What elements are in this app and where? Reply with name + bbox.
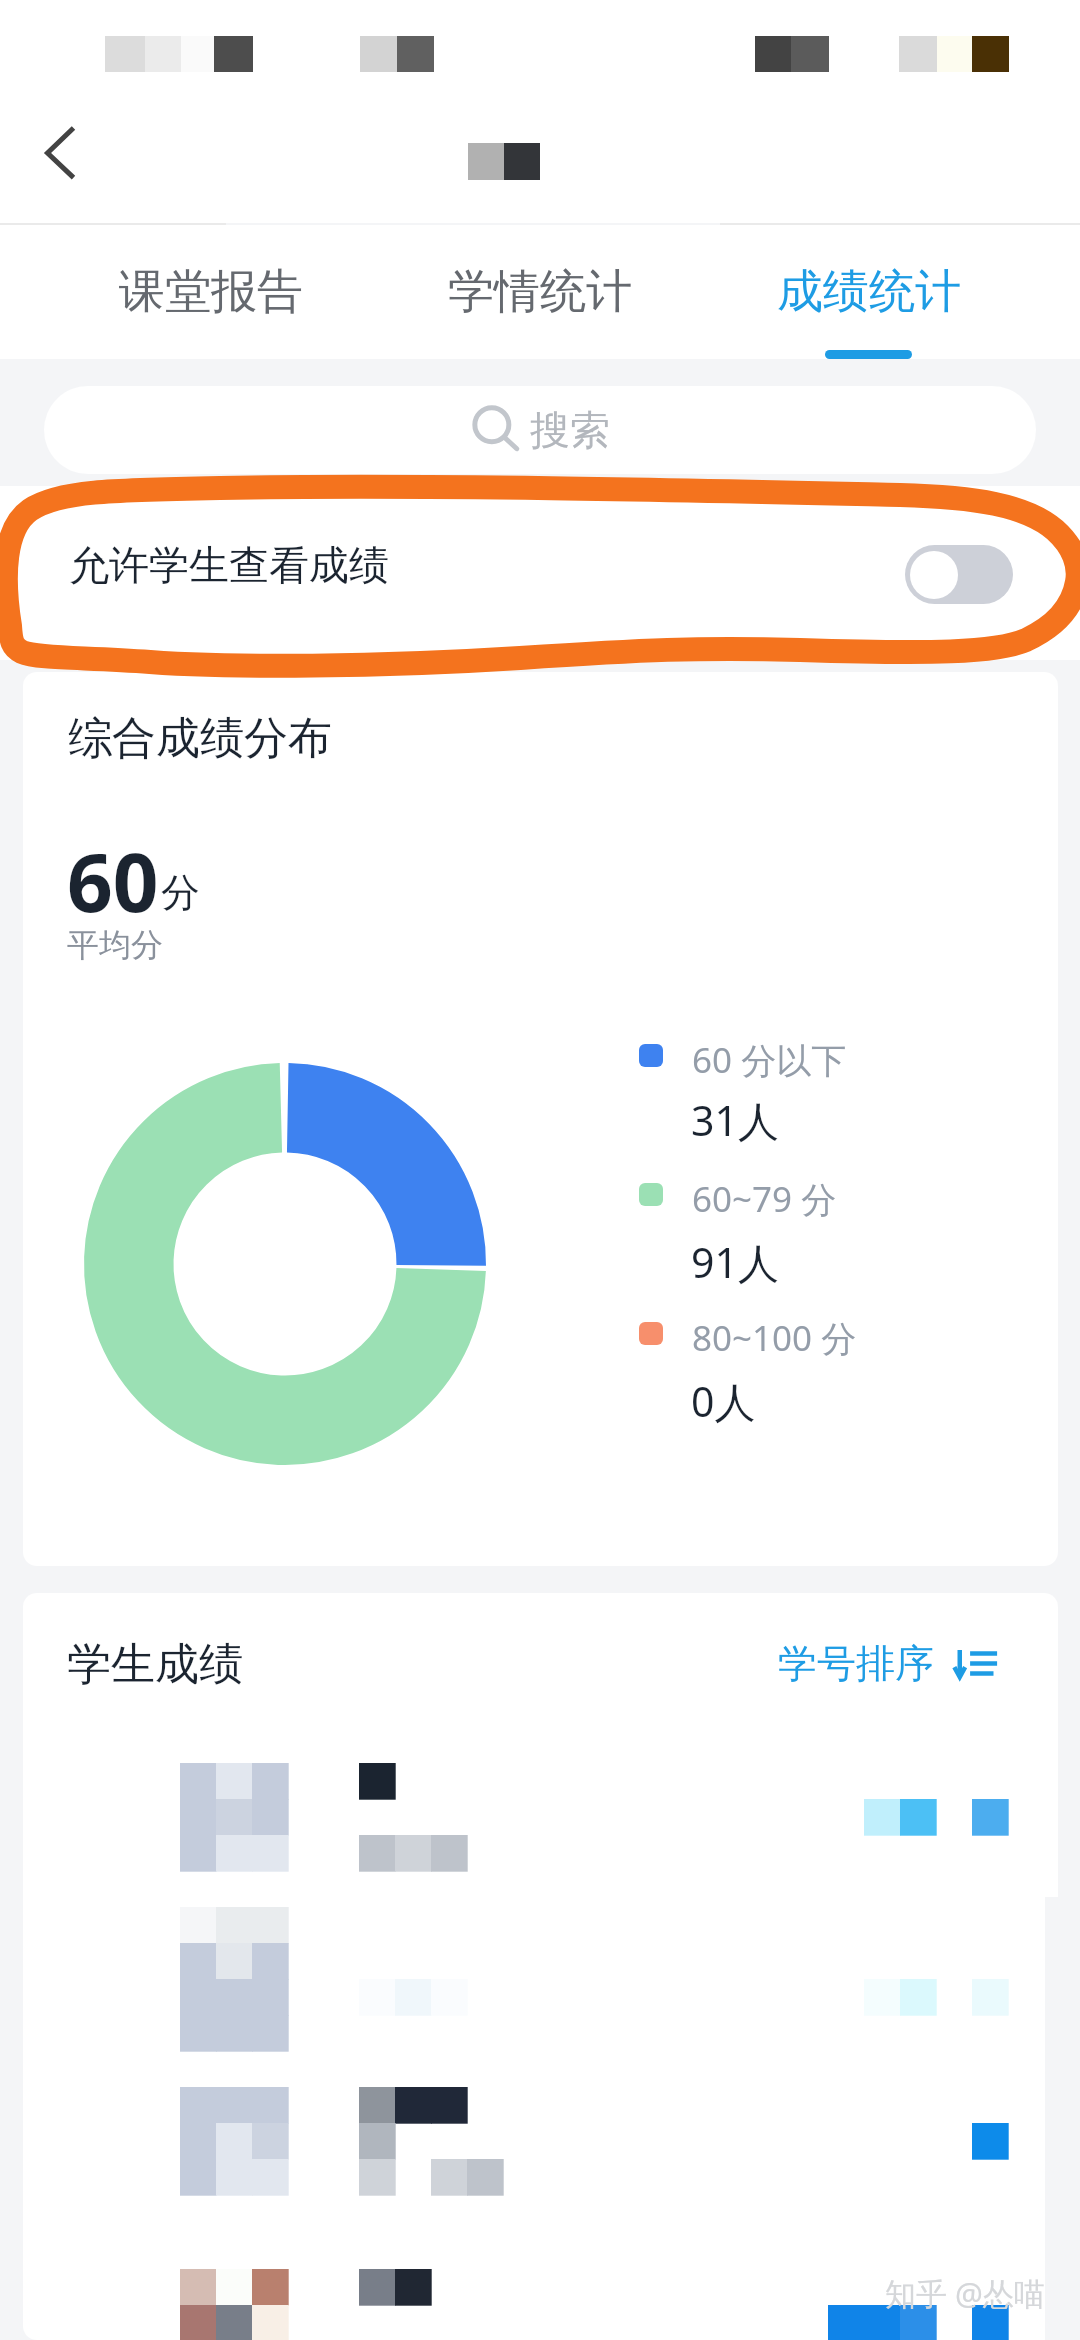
staticText: 知乎 @怂喵 [885,2272,1045,2314]
button[interactable] [23,2269,1058,2340]
staticText: 分 [161,868,200,917]
staticText: 综合成绩分布 [68,711,332,766]
staticText: 60~79 分 [692,1175,837,1223]
staticText: 成绩统计 [777,263,961,321]
staticText: 91人 [691,1234,779,1290]
staticText: 搜索 [530,405,610,455]
staticText: 学情统计 [448,263,632,321]
button[interactable]: 成绩统计 [704,225,1033,359]
staticText: 80~100 分 [692,1314,857,1362]
staticText: 平均分 [67,925,163,965]
button[interactable]: 搜索 [44,386,1036,474]
staticText: 0人 [691,1373,756,1429]
button[interactable]: 学号排序 [778,1639,998,1688]
button[interactable] [23,1763,1058,1907]
staticText: 允许学生查看成绩 [69,540,389,590]
staticText: 60 [67,826,159,935]
button[interactable]: 学情统计 [375,225,704,359]
button[interactable] [23,1907,1058,2087]
button[interactable]: 允许学生查看成绩 [0,486,1080,660]
staticText: 学号排序 [778,1639,934,1688]
button[interactable]: Back [10,105,106,201]
staticText: 60 分以下 [692,1036,847,1084]
button[interactable] [23,2087,1058,2269]
button[interactable]: 允许学生查看成绩 [905,545,1013,604]
button[interactable]: 课堂报告 [46,225,375,359]
staticText: 学生成绩 [67,1637,243,1692]
staticText: 课堂报告 [119,263,303,321]
staticText: 31人 [691,1092,779,1148]
